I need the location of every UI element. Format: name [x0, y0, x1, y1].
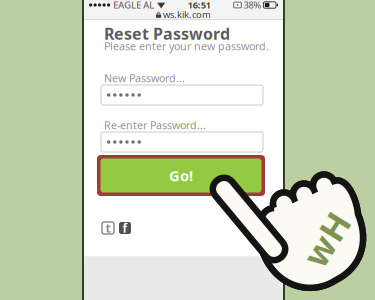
staticText: Re-enter Password...	[104, 118, 206, 132]
staticText: f	[122, 220, 127, 236]
staticText: wH	[298, 216, 355, 262]
staticText: Reset Password	[104, 23, 230, 44]
staticText: Go!	[169, 166, 193, 185]
button[interactable]: Share on Facebook	[119, 222, 131, 234]
staticText: 16:51	[188, 0, 211, 11]
staticText: EAGLE AL	[113, 0, 154, 11]
staticText: ws.kik.com	[163, 8, 211, 21]
staticText: New Password...	[104, 71, 185, 85]
button[interactable]: Go!	[97, 155, 265, 196]
staticText: t	[105, 220, 110, 236]
staticText: Please enter your new password.	[104, 39, 269, 53]
button[interactable]: Share on Twitter	[102, 222, 114, 234]
staticText: 38%	[243, 0, 261, 11]
